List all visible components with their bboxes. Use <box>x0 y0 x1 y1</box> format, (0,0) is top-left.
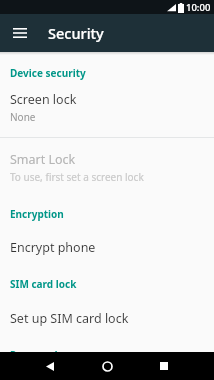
staticText: None <box>10 110 36 124</box>
button[interactable]: Screen lock <box>0 80 214 137</box>
staticText: Set up SIM card lock <box>10 310 129 327</box>
button[interactable]: Open navigation drawer <box>6 19 34 47</box>
staticText: Passwords <box>10 348 63 362</box>
button[interactable]: Smart Lock <box>0 138 214 198</box>
staticText: Encrypt phone <box>10 239 96 256</box>
button[interactable]: Back <box>38 354 62 378</box>
staticText: Encryption <box>10 207 64 221</box>
staticText: Security <box>48 23 104 43</box>
button[interactable]: Recent apps <box>152 354 176 378</box>
staticText: Smart Lock <box>10 151 76 168</box>
staticText: SIM card lock <box>10 277 77 291</box>
button[interactable]: Set up SIM card lock <box>0 291 214 343</box>
staticText: Device security <box>10 66 86 80</box>
button[interactable]: Make passwords visible <box>0 362 214 380</box>
staticText: Screen lock <box>10 91 77 108</box>
button[interactable]: Encrypt phone <box>0 221 214 272</box>
staticText: To use, first set a screen lock <box>10 170 144 184</box>
button[interactable]: Home <box>95 354 119 378</box>
staticText: 10:00 <box>186 1 211 14</box>
